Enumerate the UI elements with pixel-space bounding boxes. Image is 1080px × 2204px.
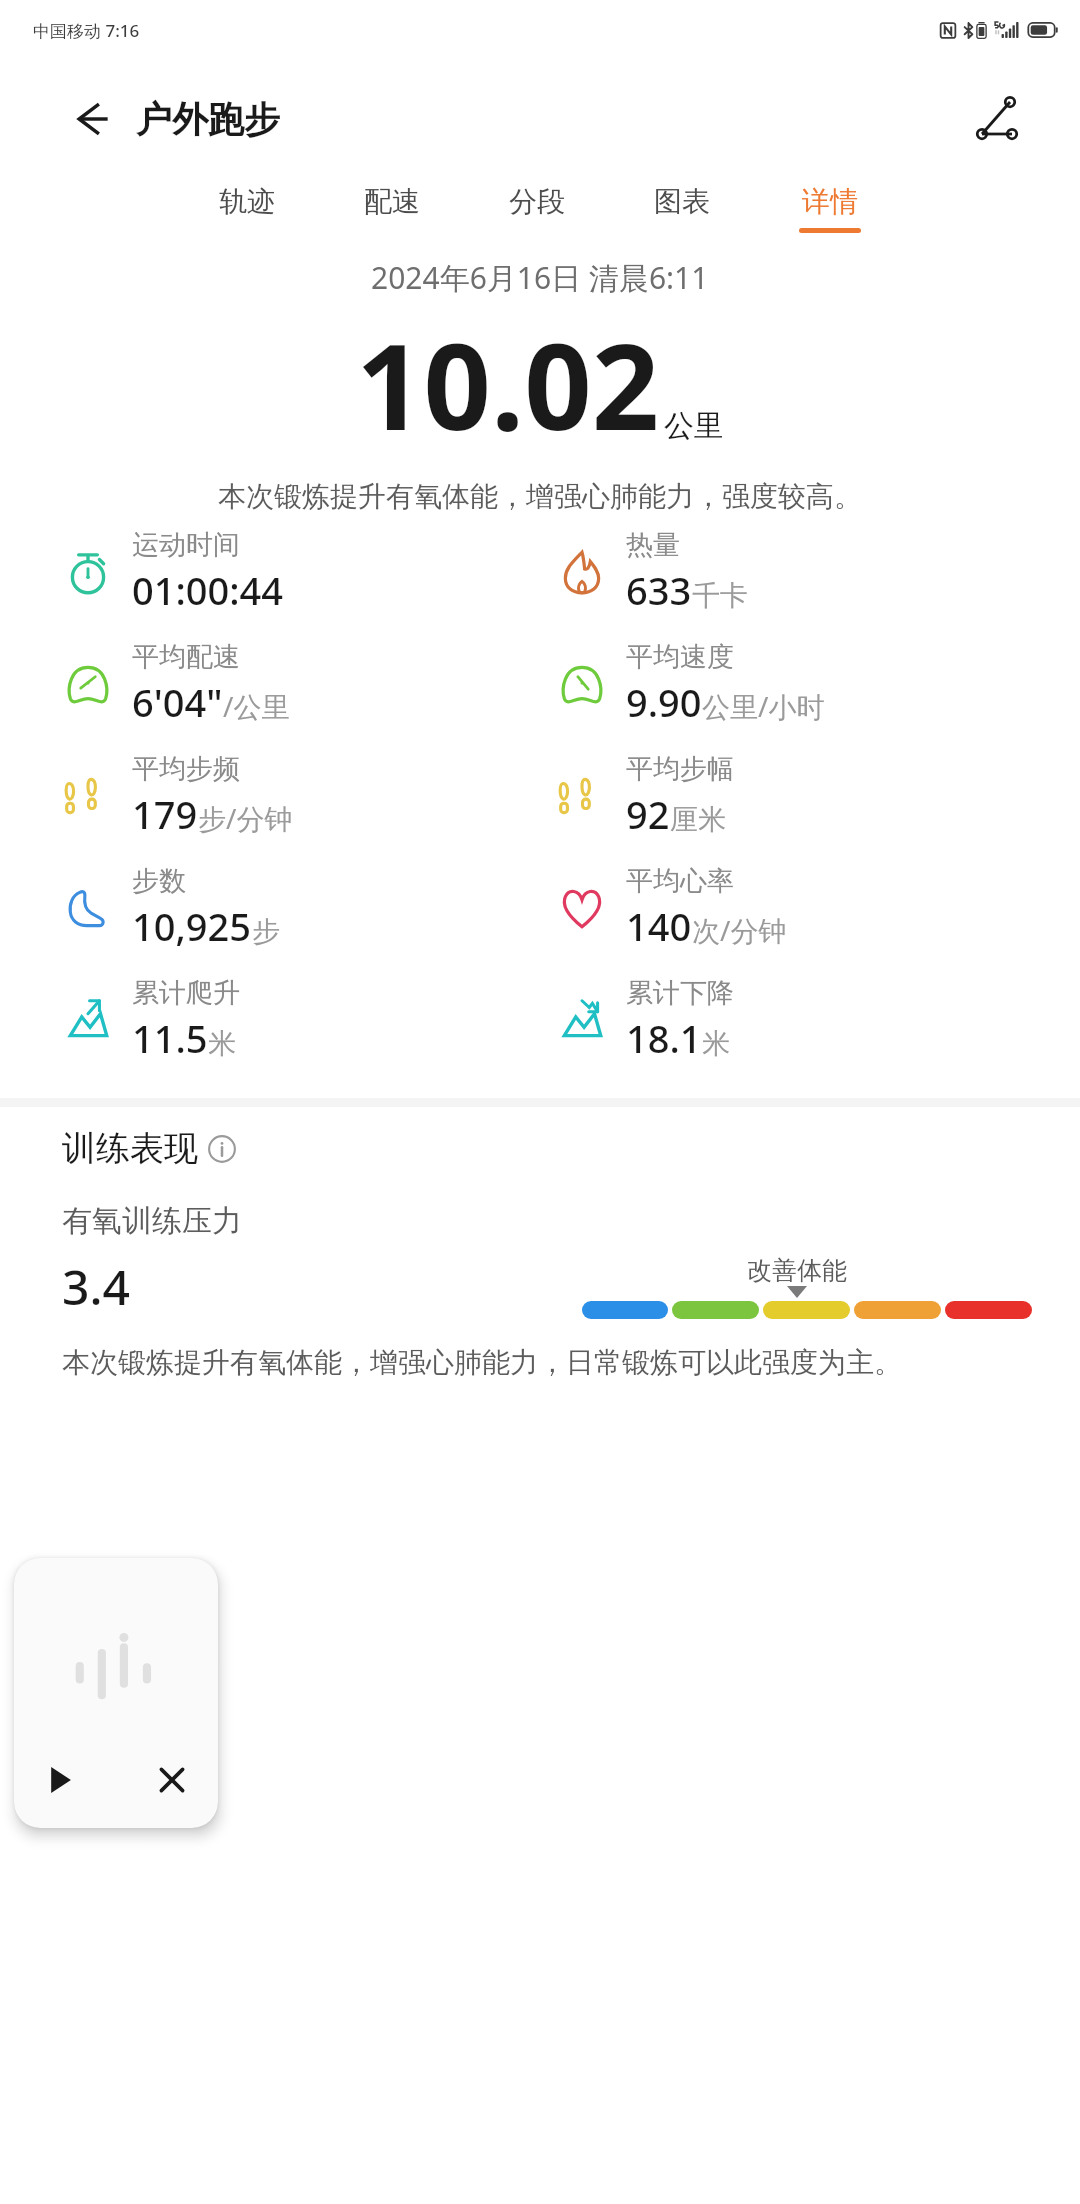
staticText: 训练表现 (62, 1127, 198, 1170)
button[interactable]: 累计爬升 (62, 976, 540, 1064)
staticText: 公里/小时 (702, 687, 825, 725)
staticText: /公里 (223, 687, 290, 725)
staticText: 轨迹 (219, 184, 275, 219)
button[interactable]: 播放 (38, 1758, 82, 1802)
staticText: 步 (252, 914, 280, 949)
staticText: 9.90 (626, 676, 702, 728)
button[interactable]: 轨迹 (215, 178, 279, 239)
staticText: 140 (626, 900, 692, 952)
staticText: 中国移动 7:16 (33, 19, 140, 42)
staticText: 2024年6月16日 清晨6:11 (371, 257, 709, 298)
staticText: 千卡 (692, 578, 748, 613)
staticText: 运动时间 (132, 528, 240, 562)
staticText: 户外跑步 (136, 97, 280, 142)
staticText: 18.1 (626, 1012, 702, 1064)
staticText: 公里 (664, 407, 724, 445)
button[interactable]: 步数 (62, 864, 540, 952)
button[interactable]: 平均心率 (556, 864, 1080, 952)
staticText: 92 (626, 788, 670, 840)
staticText: 平均配速 (132, 640, 240, 674)
button[interactable]: 平均速度 (556, 640, 1080, 728)
staticText: 633 (626, 564, 692, 616)
staticText: 有氧训练压力 (62, 1202, 242, 1240)
button[interactable]: 播放 (14, 1558, 218, 1828)
staticText: 次/分钟 (692, 911, 787, 949)
staticText: 米 (702, 1026, 730, 1061)
staticText: 平均心率 (626, 864, 734, 898)
button[interactable]: 平均步频 (62, 752, 540, 840)
button[interactable]: 图表 (650, 178, 714, 239)
staticText: 11.5 (132, 1012, 208, 1064)
staticText: 10,925 (132, 900, 252, 952)
button[interactable]: 详情 (795, 178, 865, 239)
staticText: 平均步频 (132, 752, 240, 786)
staticText: 3.4 (62, 1254, 130, 1319)
staticText: 米 (208, 1026, 236, 1061)
button[interactable]: 训练表现 (62, 1127, 236, 1170)
button[interactable]: 配速 (360, 178, 424, 239)
staticText: 累计下降 (626, 976, 734, 1010)
button[interactable]: 平均配速 (62, 640, 540, 728)
button[interactable]: 运动时间 (62, 528, 540, 616)
staticText: 步/分钟 (198, 799, 293, 837)
button[interactable]: 热量 (556, 528, 1080, 616)
button[interactable]: 返回 (60, 87, 124, 151)
button[interactable]: 分享 (962, 84, 1032, 154)
staticText: 厘米 (670, 802, 726, 837)
button[interactable]: 平均步幅 (556, 752, 1080, 840)
button[interactable]: 累计下降 (556, 976, 1080, 1064)
staticText: 平均步幅 (626, 752, 734, 786)
staticText: 本次锻炼提升有氧体能，增强心肺能力，日常锻炼可以此强度为主。 (62, 1345, 902, 1380)
staticText: 平均速度 (626, 640, 734, 674)
staticText: 分段 (509, 184, 565, 219)
staticText: 热量 (626, 528, 680, 562)
staticText: 详情 (802, 184, 858, 219)
staticText: 10.02 (356, 304, 660, 465)
staticText: 179 (132, 788, 198, 840)
button[interactable]: 分段 (505, 178, 569, 239)
staticText: 01:00:44 (132, 564, 284, 616)
staticText: 累计爬升 (132, 976, 240, 1010)
staticText: 6'04" (132, 676, 223, 728)
button[interactable]: 关闭 (150, 1758, 194, 1802)
staticText: 图表 (654, 184, 710, 219)
staticText: 本次锻炼提升有氧体能，增强心肺能力，强度较高。 (218, 479, 862, 514)
staticText: 配速 (364, 184, 420, 219)
staticText: 改善体能 (747, 1255, 847, 1286)
staticText: 步数 (132, 864, 186, 898)
